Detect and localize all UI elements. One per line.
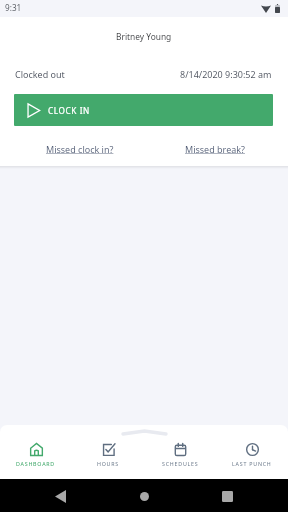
button[interactable]: DASHBOARD xyxy=(0,425,72,479)
button[interactable]: Missed break? xyxy=(177,140,253,158)
button[interactable]: HOURS xyxy=(72,425,144,479)
button[interactable]: LAST PUNCH xyxy=(216,425,288,479)
button[interactable]: CLOCK IN xyxy=(14,94,273,126)
button[interactable]: Home xyxy=(132,484,156,508)
button[interactable]: SCHEDULES xyxy=(144,425,216,479)
button[interactable]: Back xyxy=(48,484,72,508)
staticText: Missed clock in? xyxy=(46,143,114,155)
staticText: CLOCK IN xyxy=(48,105,90,116)
staticText: Missed break? xyxy=(185,143,245,155)
staticText: HOURS xyxy=(97,460,120,467)
button[interactable]: Missed clock in? xyxy=(38,140,122,158)
staticText: DASHBOARD xyxy=(16,460,56,467)
staticText: Britney Young xyxy=(116,31,172,42)
staticText: 8/14/2020 9:30:52 am xyxy=(180,68,272,80)
staticText: Clocked out xyxy=(15,68,65,80)
staticText: SCHEDULES xyxy=(162,460,199,467)
staticText: LAST PUNCH xyxy=(232,460,272,467)
staticText: 9:31 xyxy=(5,2,22,13)
button[interactable]: Recents xyxy=(215,484,239,508)
